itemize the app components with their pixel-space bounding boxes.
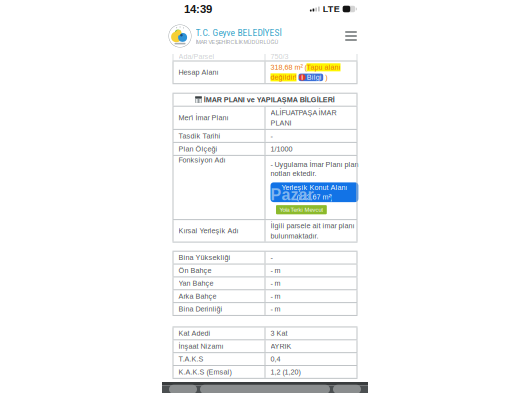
staticText: Tasdik Tarihi (178, 132, 220, 140)
staticText: ALİFUATPAŞA İMAR (270, 109, 336, 117)
staticText: Yola Terki Mevcut (279, 206, 323, 213)
button[interactable]: Tabs (333, 385, 361, 393)
staticText: 1,2 (1,20) (270, 368, 300, 376)
staticText: Bina Yüksekliği (178, 254, 230, 262)
staticText: - Uygulama İmar Planı plan (270, 160, 358, 168)
staticText: - m (270, 305, 280, 313)
staticText: K.A.K.S (Emsal) (178, 368, 231, 376)
staticText: Tapu alanı (306, 63, 340, 71)
staticText: Mer'i İmar Planı (178, 114, 228, 122)
staticText: Bilgi (307, 73, 322, 81)
staticText: notları ektedir. (270, 169, 316, 177)
staticText: İnşaat Nizamı (178, 342, 223, 350)
staticText: 318,68 m² ( (270, 63, 306, 71)
staticText: Kat Adedi (178, 329, 210, 337)
staticText: PLANI (270, 119, 291, 127)
staticText: 0,4 (270, 355, 280, 363)
staticText: Plan Ölçeği (178, 145, 217, 153)
staticText: Ön Bahçe (178, 266, 211, 274)
staticText: Pazar (270, 186, 313, 204)
staticText: LTE (323, 4, 340, 14)
staticText: - m (270, 266, 280, 274)
staticText: Ada/Parsel (178, 52, 214, 60)
staticText: i (301, 74, 303, 81)
staticText: - m (270, 292, 280, 300)
staticText: Yan Bahçe (178, 279, 213, 287)
staticText: İlgili parsele ait imar planı (270, 222, 354, 230)
staticText: - (270, 254, 272, 262)
staticText: T.C. Geyve BELEDİYESİ (195, 27, 281, 38)
staticText: Fonksiyon Adı (178, 156, 225, 164)
staticText: Yerleşik Konut Alanı (281, 183, 347, 191)
button[interactable]: Back (169, 385, 197, 393)
staticText: 3 Kat (270, 329, 287, 337)
staticText: 14:39 (184, 3, 212, 15)
button[interactable]: Address (200, 385, 330, 393)
staticText: Arka Bahçe (178, 292, 216, 300)
staticText: Hesap Alanı (178, 68, 218, 76)
staticText: - (270, 132, 272, 140)
staticText: İMAR VE ŞEHİRCİLİK MÜDÜRLÜĞÜ (195, 39, 278, 45)
staticText: T.A.K.S (178, 355, 203, 363)
staticText: 750/3 (270, 52, 288, 60)
staticText: AYRIK (270, 342, 291, 350)
button[interactable]: i (298, 74, 323, 81)
staticText (296, 73, 298, 81)
staticText: ) (323, 73, 327, 81)
staticText: değildir! (270, 73, 296, 81)
staticText: (223,67 m²) (296, 193, 332, 201)
staticText: bulunmaktadır. (270, 232, 318, 240)
staticText: Kırsal Yerleşik Adı (178, 227, 238, 235)
staticText: Bina Derinliği (178, 305, 222, 313)
staticText: İMAR PLANI ve YAPILAŞMA BİLGİLERİ (202, 96, 335, 104)
staticText: - m (270, 279, 280, 287)
button[interactable]: Menu (340, 25, 362, 47)
staticText: 1/1000 (270, 145, 292, 153)
